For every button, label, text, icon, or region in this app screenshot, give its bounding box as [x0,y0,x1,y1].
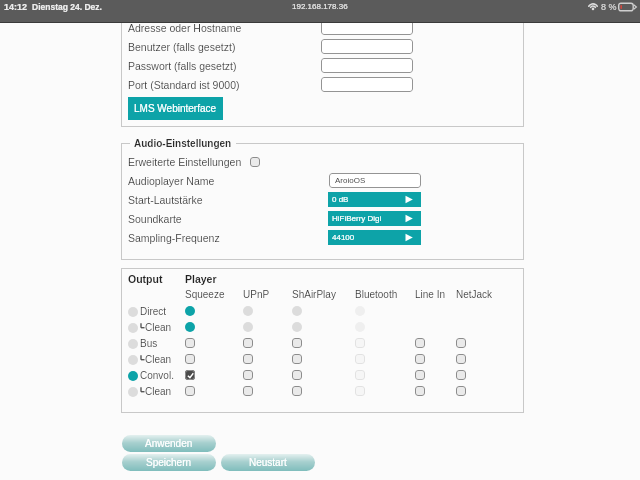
other: Akku 8 Prozent [618,2,637,12]
button[interactable]: Option [243,306,253,316]
button[interactable]: Kontrollkaestchen [185,386,195,396]
staticText: Player [185,273,217,285]
staticText: 44100 [332,233,355,242]
button[interactable]: Kontrollkaestchen [456,338,466,348]
button[interactable]: Neustart [221,454,315,471]
staticText: Anwenden [145,438,193,449]
button[interactable]: Option [128,339,138,349]
button[interactable]: Option [128,387,138,397]
staticText: LMS Webinterface [134,103,217,114]
button[interactable]: Kontrollkaestchen [243,386,253,396]
button[interactable]: Kontrollkaestchen [292,354,302,364]
staticText: NetJack [456,289,493,300]
button[interactable]: Option [355,322,365,332]
staticText: Audioplayer Name [128,175,215,187]
staticText: Speichern [146,457,192,468]
staticText: 14:12 [4,2,28,12]
staticText: 8 % [601,2,617,12]
button[interactable]: Kontrollkaestchen [355,354,365,364]
staticText: Audio-Einstellungen [134,138,232,149]
button[interactable]: Option [243,322,253,332]
button[interactable]: 44100 [328,230,421,245]
button[interactable]: Kontrollkaestchen [185,338,195,348]
button[interactable]: Kontrollkaestchen [292,386,302,396]
staticText: Output [128,273,163,285]
button[interactable]: Kontrollkaestchen [185,354,195,364]
other: WLAN [588,1,598,12]
button[interactable]: Option [292,306,302,316]
button[interactable]: Kontrollkaestchen [456,354,466,364]
staticText: Convol. [140,370,174,381]
staticText: Dienstag 24. Dez. [32,2,102,11]
button[interactable]: Kontrollkaestchen [456,370,466,380]
staticText: 192.168.178.36 [292,2,348,11]
staticText: Port (Standard ist 9000) [128,79,240,91]
button[interactable]: Option [128,371,138,381]
button[interactable]: Kontrollkaestchen [250,157,260,167]
button[interactable]: Option [185,322,195,332]
button[interactable]: Kontrollkaestchen [292,338,302,348]
button[interactable]: HiFiBerry Digi [328,211,421,226]
button[interactable]: Kontrollkaestchen [415,338,425,348]
button[interactable]: Speichern [122,454,216,471]
button[interactable]: Kontrollkaestchen [456,386,466,396]
button[interactable] [321,39,413,54]
button[interactable]: Kontrollkaestchen [185,370,195,380]
staticText: Line In [415,289,446,300]
button[interactable]: Kontrollkaestchen [415,354,425,364]
staticText: HiFiBerry Digi [332,214,382,223]
button[interactable]: Option [128,307,138,317]
button[interactable]: Kontrollkaestchen [355,370,365,380]
staticText: Benutzer (falls gesetzt) [128,41,236,53]
staticText: Start-Lautstärke [128,194,203,206]
button[interactable]: Option [355,306,365,316]
button[interactable]: Kontrollkaestchen [355,338,365,348]
staticText: Clean [145,322,172,333]
staticText: Neustart [249,457,287,468]
button[interactable]: Option [128,355,138,365]
button[interactable]: Option [292,322,302,332]
staticText: Clean [145,354,172,365]
staticText: AroioOS [335,176,366,185]
staticText: Direct [140,306,167,317]
staticText: Adresse oder Hostname [128,22,242,34]
button[interactable]: Kontrollkaestchen [243,354,253,364]
staticText: 0 dB [332,195,349,204]
button[interactable] [321,77,413,92]
button[interactable]: Kontrollkaestchen [355,386,365,396]
button[interactable]: LMS Webinterface [128,97,223,120]
staticText: Soundkarte [128,213,182,225]
button[interactable]: Option [185,306,195,316]
staticText: Sampling-Frequenz [128,232,220,244]
staticText: Erweiterte Einstellungen [128,156,242,168]
staticText: Squeeze [185,289,225,300]
button[interactable]: Kontrollkaestchen [243,338,253,348]
button[interactable]: AroioOS [329,173,421,188]
button[interactable] [321,20,413,35]
staticText: Clean [145,386,172,397]
button[interactable]: Kontrollkaestchen [243,370,253,380]
staticText: Bus [140,338,158,349]
button[interactable]: Option [128,323,138,333]
staticText: Passwort (falls gesetzt) [128,60,237,72]
button[interactable]: 0 dB [328,192,421,207]
button[interactable]: Anwenden [122,435,216,452]
button[interactable]: Kontrollkaestchen [292,370,302,380]
button[interactable]: Kontrollkaestchen [415,386,425,396]
staticText: ShAirPlay [292,289,336,300]
button[interactable]: Kontrollkaestchen [415,370,425,380]
staticText: Bluetooth [355,289,398,300]
button[interactable] [321,58,413,73]
staticText: UPnP [243,289,270,300]
